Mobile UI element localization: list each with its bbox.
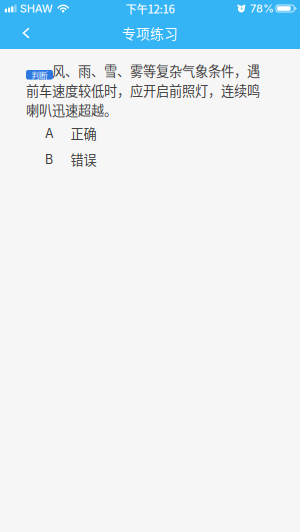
button[interactable]: B (45, 146, 269, 172)
staticText: 错误 (70, 150, 96, 169)
staticText: A (45, 126, 54, 141)
staticText: 正确 (70, 124, 96, 143)
staticText: 下午12:16 (125, 0, 174, 17)
staticText: 判断 (31, 69, 47, 81)
button[interactable]: Back (0, 18, 42, 48)
staticText: 78% (250, 2, 274, 15)
staticText: SHAW (20, 2, 53, 15)
button[interactable]: A (45, 120, 269, 146)
staticText: B (45, 152, 53, 167)
staticText: 专项练习 (122, 23, 178, 43)
staticText: 风、雨、雪、雾等复杂气象条件，遇前车速度较低时，应开启前照灯，连续鸣喇叭迅速超越… (26, 61, 260, 119)
